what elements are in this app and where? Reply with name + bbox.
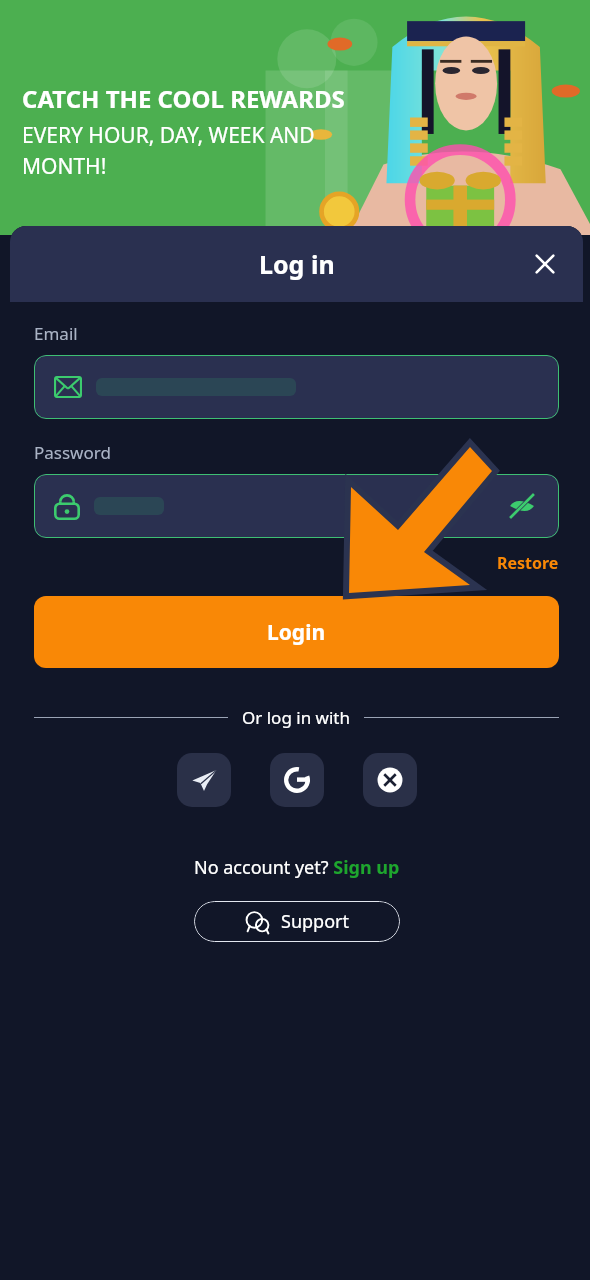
staticText: EVERY HOUR, DAY, WEEK AND MONTH! bbox=[22, 121, 315, 180]
staticText: Login bbox=[267, 618, 326, 647]
button[interactable]: Show password bbox=[505, 489, 539, 523]
staticText: Support bbox=[281, 909, 349, 934]
button[interactable]: No account yet? Sign up bbox=[194, 855, 400, 880]
staticText: CATCH THE COOL REWARDS bbox=[22, 82, 345, 115]
button[interactable]: Log in with Google bbox=[270, 753, 324, 807]
staticText: No account yet? Sign up bbox=[194, 855, 400, 880]
button[interactable] bbox=[34, 355, 559, 419]
button[interactable]: Restore bbox=[497, 552, 559, 574]
button[interactable]: Log in with Telegram bbox=[177, 753, 231, 807]
staticText: Restore bbox=[497, 552, 559, 574]
button[interactable]: Log in with X bbox=[363, 753, 417, 807]
staticText: Password bbox=[34, 441, 111, 464]
button[interactable]: Login bbox=[34, 596, 559, 668]
staticText: Log in bbox=[259, 247, 335, 281]
button[interactable]: Close bbox=[523, 242, 567, 286]
staticText: Email bbox=[34, 322, 78, 345]
button[interactable]: Show password bbox=[34, 474, 559, 538]
staticText: Or log in with bbox=[242, 706, 350, 729]
button[interactable]: Support bbox=[194, 901, 400, 942]
